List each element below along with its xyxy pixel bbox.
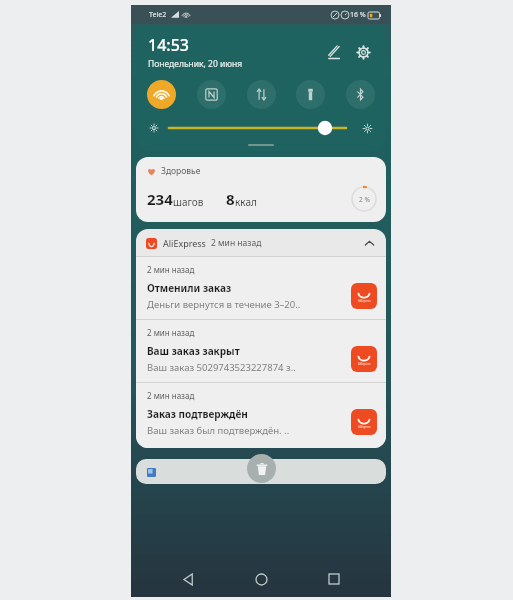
staticText: 2 мин назад [147, 327, 195, 338]
button[interactable]: 2 мин назад [136, 383, 386, 448]
button[interactable]: Здоровье [136, 157, 386, 222]
staticText: Заказ подтверждён [147, 407, 248, 421]
staticText: Здоровье [161, 165, 201, 177]
button[interactable]: Wi-Fi [147, 80, 176, 109]
staticText: AliExpress [358, 425, 371, 429]
staticText: ккал [235, 195, 257, 209]
staticText: 2 мин назад [147, 390, 195, 401]
button[interactable]: Bluetooth [346, 80, 375, 109]
staticText: 2 мин назад [211, 237, 262, 249]
staticText: 234 [147, 189, 173, 209]
button[interactable]: Mobile data [247, 80, 276, 109]
staticText: Отменили заказ [147, 281, 232, 295]
button[interactable]: 2 мин назад [136, 257, 386, 319]
staticText: 14:53 [148, 34, 189, 56]
button[interactable]: Home [246, 564, 276, 594]
button[interactable]: Notification settings [144, 465, 158, 479]
staticText: Tele2 [149, 10, 167, 20]
staticText: Ваш заказ закрыт [147, 344, 240, 358]
button[interactable]: Back [174, 564, 204, 594]
button[interactable]: Edit [320, 39, 346, 65]
staticText: Понедельник, 20 июня [148, 58, 243, 70]
staticText: AliExpress [358, 299, 371, 303]
button[interactable]: Clear all notifications [247, 454, 276, 483]
staticText: Ваш заказ 5029743523227874 з.. [147, 361, 296, 374]
staticText: 2 мин назад [147, 264, 195, 275]
button[interactable]: NFC [197, 80, 226, 109]
staticText: Деньги вернутся в течение 3–20.. [147, 298, 301, 311]
button[interactable]: AliExpress [136, 229, 386, 256]
staticText: 8 [226, 189, 235, 209]
staticText: 2 % [359, 195, 370, 204]
staticText: AliExpress [358, 362, 371, 366]
staticText: шагов [173, 195, 204, 209]
staticText: Ваш заказ был подтверждён. .. [147, 424, 290, 437]
button[interactable]: Settings [350, 39, 376, 65]
button[interactable]: Brightness [167, 120, 354, 136]
staticText: AliExpress [163, 237, 206, 249]
button[interactable]: 2 мин назад [136, 320, 386, 382]
button[interactable]: Recents [319, 564, 349, 594]
button[interactable]: Flashlight [296, 80, 325, 109]
staticText: 16 % [350, 10, 366, 20]
